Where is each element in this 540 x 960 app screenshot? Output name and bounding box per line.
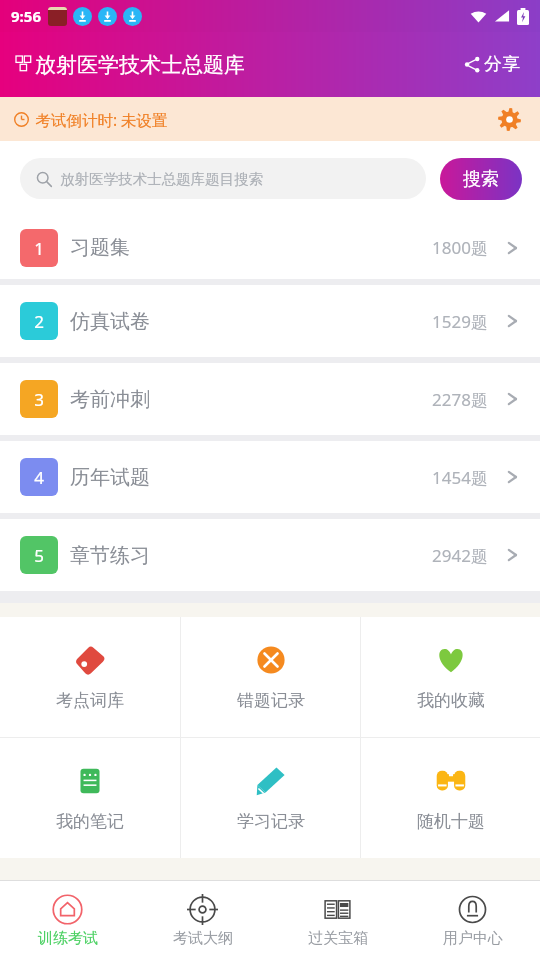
staticText: 5 (34, 544, 44, 567)
button[interactable]: 错题记录 (181, 617, 360, 737)
staticText: 放射医学技术士总题库题目搜索 (60, 170, 263, 188)
button[interactable]: 3 (0, 363, 540, 435)
button[interactable]: 我的收藏 (361, 617, 540, 737)
staticText: 用户中心 (443, 929, 503, 948)
button[interactable]: 用户中心 (405, 881, 540, 960)
staticText: 2 (34, 310, 44, 333)
button[interactable]: Settings (492, 102, 526, 136)
staticText: 过关宝箱 (308, 929, 368, 948)
button[interactable]: 我的笔记 (0, 738, 180, 858)
staticText: 考前冲刺 (70, 387, 150, 412)
staticText: 4 (34, 466, 44, 489)
staticText: 章节练习 (70, 543, 150, 568)
button[interactable]: 2 (0, 285, 540, 357)
staticText: 分享 (484, 53, 520, 76)
button[interactable]: 考点词库 (0, 617, 180, 737)
button[interactable]: 放射医学技术士总题库题目搜索 (20, 158, 426, 199)
staticText: 9:56 (11, 6, 41, 26)
staticText: 2942题 (432, 544, 488, 567)
button[interactable]: 随机十题 (361, 738, 540, 858)
staticText: 1800题 (432, 236, 488, 259)
button[interactable]: 4 (0, 441, 540, 513)
staticText: 考点词库 (56, 690, 124, 711)
staticText: 错题记录 (237, 690, 305, 711)
staticText: 考试倒计时: 未设置 (35, 109, 168, 130)
staticText: 习题集 (70, 235, 130, 260)
button[interactable]: 考试大纲 (135, 881, 270, 960)
staticText: 仿真试卷 (70, 309, 150, 334)
staticText: 训练考试 (38, 929, 98, 948)
staticText: 1454题 (432, 466, 488, 489)
button[interactable]: 学习记录 (181, 738, 360, 858)
staticText: 2278题 (432, 388, 488, 411)
staticText: 1 (34, 237, 44, 260)
staticText: 搜索 (463, 168, 499, 191)
button[interactable]: 搜索 (440, 158, 522, 200)
button[interactable]: 分享 (458, 47, 526, 82)
staticText: 历年试题 (70, 465, 150, 490)
staticText: 我的笔记 (56, 811, 124, 832)
staticText: 随机十题 (417, 811, 485, 832)
button[interactable]: 5 (0, 519, 540, 591)
staticText: 我的收藏 (417, 690, 485, 711)
staticText: 3 (34, 388, 44, 411)
staticText: 1529题 (432, 310, 488, 333)
button[interactable]: 1 (0, 216, 540, 279)
staticText: 放射医学技术士总题库 (35, 52, 245, 78)
staticText: 学习记录 (237, 811, 305, 832)
staticText: 考试大纲 (173, 929, 233, 948)
button[interactable]: 过关宝箱 (270, 881, 405, 960)
button[interactable]: 训练考试 (0, 881, 135, 960)
